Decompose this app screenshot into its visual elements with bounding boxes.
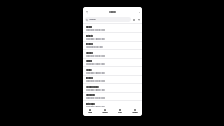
staticText: Lorem ipsum 3 Wrysnb 6 days (86, 98, 105, 100)
staticText: Byroneill (86, 77, 93, 79)
staticText: Byronsonderdor (86, 85, 99, 87)
staticText: Baturinbah (86, 102, 95, 104)
staticText: Byrons (86, 68, 92, 70)
staticText: Lorem ipsum 5 Wrysnb 3 days (86, 80, 105, 82)
button[interactable]: Byroneill (83, 41, 142, 50)
staticText: Byroneill (86, 42, 93, 44)
staticText: Agromades (86, 94, 95, 96)
staticText: Cymrose ars bryant 3 days (86, 47, 103, 49)
staticText: Home (88, 112, 92, 114)
staticText: Lorem ipsum 3 Wrysnb 2 days (86, 55, 105, 57)
staticText: Agromades (86, 93, 95, 95)
staticText: Agromyz (86, 51, 93, 53)
staticText: Cymrose ars bryant 3 days (86, 46, 103, 48)
staticText: Agrome (86, 25, 92, 27)
staticText: Homepage (109, 11, 116, 13)
staticText: Apomia (86, 59, 92, 61)
button[interactable]: More options (136, 9, 142, 15)
staticText: Byrons (86, 68, 92, 70)
staticText: Byrons (86, 69, 92, 71)
staticText: Lorem ipsum 3 Bemski 1 days (86, 90, 105, 92)
staticText: Services (102, 112, 108, 114)
button[interactable]: Home (83, 109, 97, 114)
button[interactable]: HOMOME (86, 17, 131, 22)
staticText: Byroneill (86, 76, 93, 78)
button[interactable]: Byronsonderdor (83, 84, 142, 93)
staticText: Apomia (86, 59, 92, 61)
button[interactable]: Baturinbah (83, 101, 142, 110)
staticText: Byronsonderdor (86, 85, 99, 87)
staticText: Home (88, 112, 92, 114)
staticText: Agromyz (86, 51, 93, 53)
button[interactable]: Baterists (83, 33, 142, 42)
button[interactable]: Agromyz (83, 50, 142, 59)
staticText: Agromyz (86, 52, 93, 54)
staticText: Settings (132, 112, 138, 114)
button[interactable]: Settings (127, 109, 142, 114)
staticText: Settings (132, 112, 138, 114)
staticText: Home (88, 112, 92, 114)
staticText: Lorem ipsum 4 Wmysh 4 days (86, 63, 105, 65)
staticText: HOMOME (89, 19, 96, 21)
staticText: Byrons (86, 69, 92, 71)
staticText: Baturinbah (86, 103, 95, 105)
button[interactable]: Apomia (83, 58, 142, 67)
button[interactable]: Byroneill (83, 75, 142, 84)
staticText: Lorem ipsum 3 Bemski 1 days (86, 89, 105, 91)
staticText: Byroneill (86, 42, 93, 44)
staticText: Lorem ipsum 3 Wrysnb 4 days (86, 30, 105, 32)
staticText: Lorem ipsum 2 Bemski 5 days (86, 73, 105, 75)
staticText: Lorem ipsum 3 Bemski 1 days (86, 90, 105, 92)
staticText: Lorem ipsum 5 Wrysnb 3 days (86, 80, 105, 82)
staticText: Agromades (86, 94, 95, 96)
button[interactable]: Services (97, 109, 112, 114)
button[interactable]: Agromades (83, 92, 142, 101)
staticText: Lorem ipsum 1 Bemski 5 days (86, 38, 105, 40)
staticText: Agrome (86, 26, 92, 28)
staticText: Lorem ipsum 2 Bemski 3 days (86, 106, 105, 108)
staticText: Baterists (86, 34, 93, 36)
staticText: Agrome (86, 26, 92, 28)
staticText: Agromyz (86, 52, 93, 54)
button[interactable]: Voice search (131, 17, 136, 22)
staticText: Baterists (86, 35, 93, 37)
staticText: Biffeldfease (86, 112, 95, 114)
staticText: Lorem ipsum 4 Wmysh 4 days (86, 63, 105, 65)
staticText: Cymrose ars bryant 3 days (86, 46, 103, 48)
staticText: Lorem ipsum 2 Bemski 5 days (86, 73, 105, 75)
staticText: Lorem ipsum 2 Bemski 5 days (86, 72, 105, 74)
staticText: Byrons (86, 68, 92, 70)
staticText: Baturinbah (86, 103, 95, 105)
staticText: Byroneill (86, 77, 93, 79)
button[interactable]: Press (112, 109, 127, 114)
button[interactable]: Biffeldfease (83, 110, 142, 116)
staticText: Lorem ipsum 3 Bemski 1 days (86, 89, 105, 91)
button[interactable]: Back (83, 8, 90, 15)
button[interactable]: Filter (136, 17, 141, 22)
button[interactable]: Agrome (83, 24, 142, 33)
staticText: HOMOME (89, 19, 96, 21)
staticText: Apomia (86, 60, 92, 62)
staticText: Homepage (109, 12, 116, 14)
staticText: Services (102, 112, 108, 114)
staticText: Lorem ipsum 1 Bemski 5 days (86, 38, 105, 40)
staticText: Homepage (109, 12, 116, 14)
staticText: Biffeldfease (86, 112, 95, 114)
staticText: Lorem ipsum 1 Bemski 5 days (86, 39, 105, 41)
staticText: Byroneill (86, 76, 93, 78)
staticText: Lorem ipsum 2 Bemski 3 days (86, 106, 105, 108)
staticText: Services (102, 112, 108, 114)
staticText: Baturinbah (86, 102, 95, 104)
staticText: Biffeldfease (86, 111, 95, 113)
staticText: Baterists (86, 34, 93, 36)
button[interactable]: Byrons (83, 67, 142, 76)
staticText: Agrome (86, 25, 92, 27)
staticText: Baterists (86, 35, 93, 37)
staticText: HOMOME (89, 19, 96, 21)
staticText: Byronsonderdor (86, 86, 99, 88)
staticText: Byroneill (86, 42, 93, 44)
staticText: Byroneill (86, 76, 93, 78)
